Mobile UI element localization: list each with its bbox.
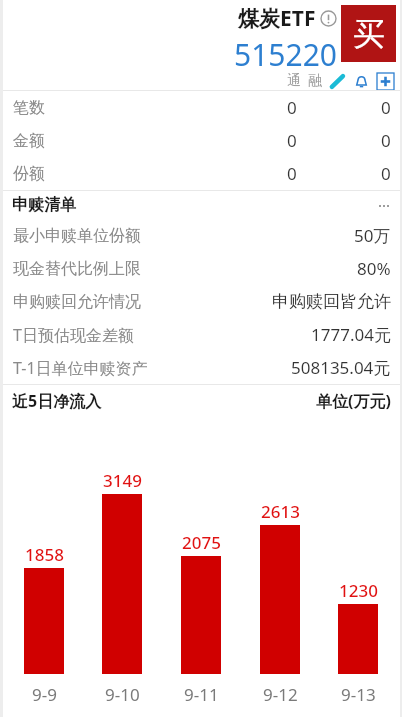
staticText: 现金替代比例上限 bbox=[13, 259, 141, 279]
staticText: 9-9 bbox=[32, 683, 57, 706]
staticText: 单位(万元) bbox=[316, 390, 391, 412]
staticText: 9-10 bbox=[105, 683, 140, 706]
staticText: 金额 bbox=[13, 131, 45, 151]
button[interactable]: 提醒 bbox=[353, 73, 370, 90]
staticText: 9-13 bbox=[341, 683, 376, 706]
staticText: 申购赎回皆允许 bbox=[272, 291, 391, 312]
staticText: 80% bbox=[357, 257, 391, 280]
staticText: 0 bbox=[381, 129, 391, 152]
staticText: 申赎清单 bbox=[12, 195, 76, 215]
staticText: 1858 bbox=[25, 543, 64, 566]
button[interactable]: T-1日单位申赎资产 bbox=[0, 351, 402, 384]
button[interactable]: 详情 bbox=[320, 10, 337, 27]
staticText: 0 bbox=[287, 129, 297, 152]
staticText: 1777.04元 bbox=[311, 323, 391, 346]
button[interactable]: 编辑 bbox=[329, 73, 346, 90]
staticText: 515220 bbox=[234, 34, 337, 75]
button[interactable]: T日预估现金差额 bbox=[0, 318, 402, 351]
staticText: 通 bbox=[287, 72, 301, 90]
staticText: 0 bbox=[287, 162, 297, 185]
staticText: 3149 bbox=[103, 469, 142, 492]
staticText: 0 bbox=[381, 96, 391, 119]
staticText: 申购赎回允许情况 bbox=[13, 292, 141, 312]
staticText: 买 bbox=[353, 14, 385, 54]
staticText: 笔数 bbox=[13, 98, 45, 118]
staticText: 508135.04元 bbox=[291, 356, 391, 379]
button[interactable]: 添加 bbox=[377, 73, 394, 90]
staticText: 份额 bbox=[13, 164, 45, 184]
staticText: 0 bbox=[287, 96, 297, 119]
staticText: 9-11 bbox=[184, 683, 219, 706]
button[interactable]: 申赎清单 bbox=[0, 191, 402, 219]
staticText: 融 bbox=[308, 72, 322, 90]
staticText: 煤炭ETF bbox=[238, 4, 316, 33]
staticText: 9-12 bbox=[263, 683, 298, 706]
staticText: T日预估现金差额 bbox=[13, 324, 134, 346]
button[interactable]: 申购赎回允许情况 bbox=[0, 285, 402, 318]
button[interactable]: 买 bbox=[341, 5, 396, 62]
staticText: 2613 bbox=[261, 500, 300, 523]
staticText: 2075 bbox=[182, 531, 221, 554]
staticText: ··· bbox=[378, 195, 391, 215]
button[interactable]: 现金替代比例上限 bbox=[0, 252, 402, 285]
staticText: 1230 bbox=[339, 579, 378, 602]
staticText: 近5日净流入 bbox=[12, 390, 102, 412]
staticText: T-1日单位申赎资产 bbox=[13, 357, 148, 379]
button[interactable]: 金额 bbox=[0, 124, 402, 157]
staticText: 50万 bbox=[354, 224, 391, 247]
button[interactable]: 份额 bbox=[0, 157, 402, 190]
staticText: 0 bbox=[381, 162, 391, 185]
staticText: 最小申赎单位份额 bbox=[13, 226, 141, 246]
button[interactable]: 笔数 bbox=[0, 91, 402, 124]
button[interactable]: 最小申赎单位份额 bbox=[0, 219, 402, 252]
